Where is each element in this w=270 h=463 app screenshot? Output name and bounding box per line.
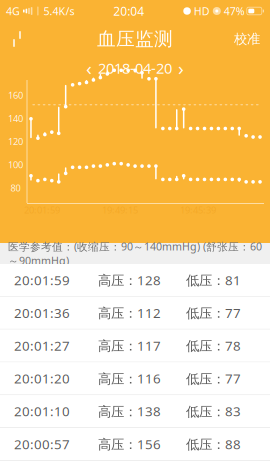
staticText: 20:01:36 xyxy=(14,304,70,322)
staticText: 低压：88 xyxy=(186,435,241,453)
staticText: ‹ xyxy=(86,56,92,80)
button[interactable]: 校准 xyxy=(224,22,270,56)
button[interactable]: 20:01:36 xyxy=(0,297,270,330)
staticText: 高压：117 xyxy=(98,337,161,354)
staticText: 20:01:59 xyxy=(14,271,70,289)
staticText: 校准 xyxy=(234,31,260,47)
staticText: 高压：112 xyxy=(98,304,161,322)
staticText: 低压：78 xyxy=(186,337,241,354)
staticText: 低压：77 xyxy=(186,369,241,387)
staticText: 120 xyxy=(8,135,23,148)
button[interactable]: Previous day xyxy=(80,57,98,79)
staticText: 80 xyxy=(10,182,20,194)
button[interactable]: 20:01:10 xyxy=(0,395,270,428)
staticText: 2018-04-20 xyxy=(98,58,172,78)
staticText: 20:01:27 xyxy=(14,337,70,354)
staticText: 20:00:57 xyxy=(14,435,70,453)
button[interactable]: Next day xyxy=(172,57,190,79)
staticText: 20:01:20 xyxy=(14,369,70,387)
staticText: 20:04 xyxy=(113,3,144,19)
staticText: 高压：156 xyxy=(98,435,161,453)
staticText: 4G xyxy=(6,4,20,18)
staticText: 血压监测 xyxy=(97,27,173,50)
staticText: 100 xyxy=(8,158,23,171)
staticText: 5.4K/s xyxy=(43,4,74,18)
button[interactable]: 20:01:20 xyxy=(0,362,270,395)
button[interactable]: 20:00:57 xyxy=(0,428,270,461)
staticText: HD xyxy=(194,4,210,18)
staticText: 高压：128 xyxy=(98,271,161,289)
staticText: 高压：138 xyxy=(98,402,161,420)
button[interactable]: 20:01:27 xyxy=(0,330,270,362)
staticText: 20:01:10 xyxy=(14,402,70,420)
staticText: 高压：116 xyxy=(98,369,161,387)
staticText: 低压：81 xyxy=(186,271,241,289)
staticText: 低压：77 xyxy=(186,304,241,322)
button[interactable]: Back xyxy=(0,22,34,56)
staticText: › xyxy=(178,56,184,80)
staticText: 低压：83 xyxy=(186,402,241,420)
staticText: 140 xyxy=(8,112,23,125)
staticText: 47% xyxy=(224,4,245,18)
staticText: 医学参考值：(收缩压：90～140mmHg) (舒张压：60～90mmHg) xyxy=(8,239,262,268)
staticText: 160 xyxy=(8,89,23,101)
button[interactable]: 20:01:59 xyxy=(0,264,270,297)
